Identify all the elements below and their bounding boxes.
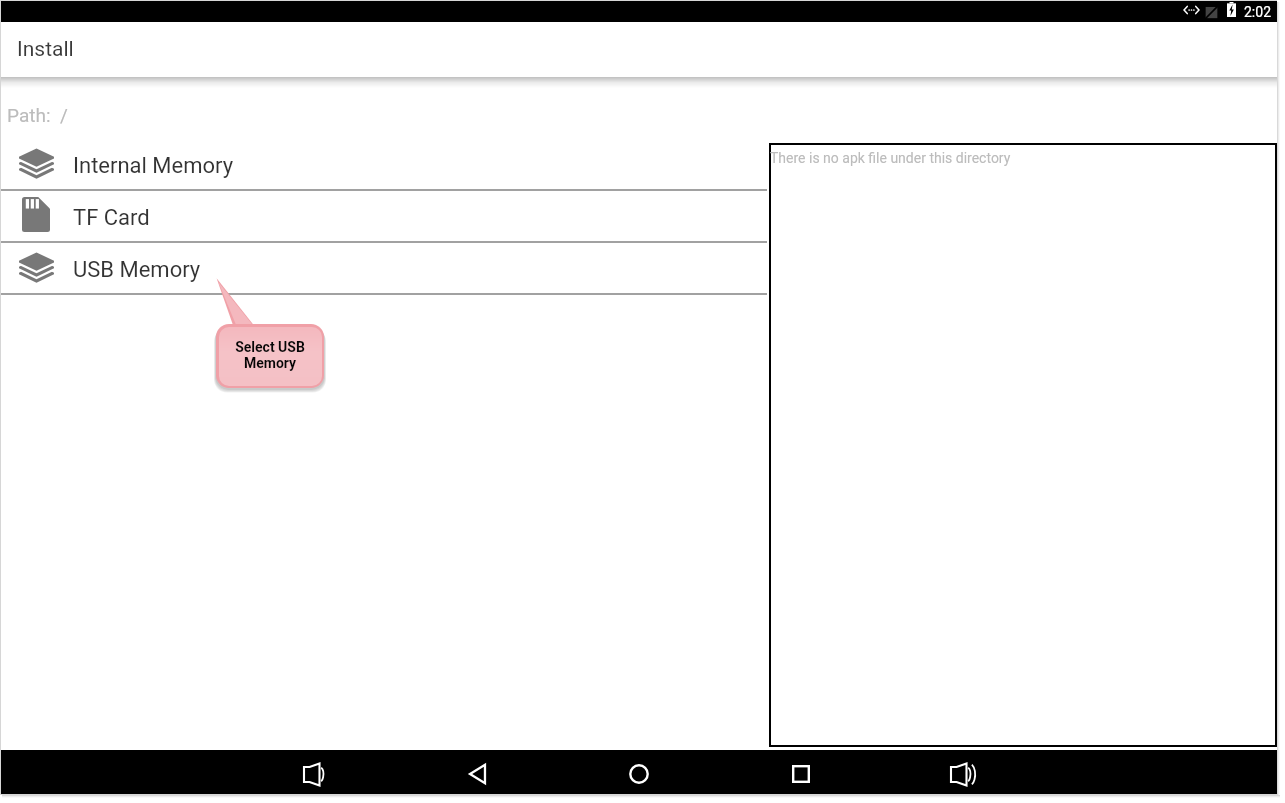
button[interactable]: Internal Memory [1,139,767,189]
staticText: There is no apk file under this director… [770,150,1011,166]
staticText: TF Card [73,205,150,231]
button[interactable]: Back [446,752,508,796]
button[interactable]: Recent apps [770,752,832,796]
button[interactable]: Home [608,752,670,796]
button[interactable]: TF Card [1,191,767,241]
button[interactable]: USB Memory [1,243,767,293]
staticText: Select USB Memory [235,339,305,371]
staticText: 2:02 [1244,4,1271,20]
staticText: Path: / [7,104,68,126]
staticText: Install [17,37,74,62]
staticText: USB Memory [73,257,201,283]
button[interactable]: Volume up [931,752,993,796]
button[interactable]: Volume down [282,752,344,796]
staticText: Internal Memory [73,153,234,179]
